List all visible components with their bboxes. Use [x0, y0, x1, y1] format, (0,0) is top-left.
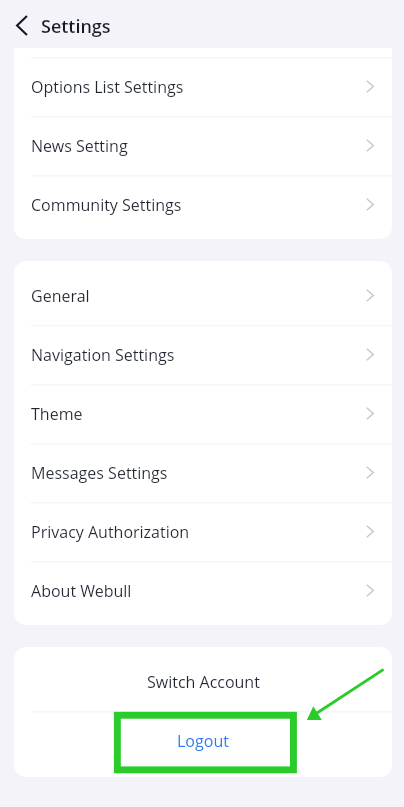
staticText: News Setting [31, 135, 128, 157]
staticText: Logout [177, 730, 229, 752]
button[interactable]: Options List Settings [14, 57, 392, 116]
staticText: General [31, 285, 90, 307]
staticText: Switch Account [147, 671, 260, 693]
button[interactable]: Back [0, 3, 43, 47]
button[interactable]: General [14, 266, 392, 325]
staticText: About Webull [31, 580, 132, 602]
button[interactable]: Community Settings [14, 175, 392, 234]
staticText: Privacy Authorization [31, 521, 190, 543]
staticText: Theme [31, 403, 83, 425]
staticText: Settings [41, 14, 111, 39]
staticText: Community Settings [31, 194, 182, 216]
button[interactable]: Privacy Authorization [14, 502, 392, 561]
button[interactable]: About Webull [14, 561, 392, 620]
button[interactable]: Logout [14, 711, 392, 770]
button[interactable]: News Setting [14, 116, 392, 175]
button[interactable]: Switch Account [14, 652, 392, 711]
button[interactable]: Theme [14, 384, 392, 443]
button[interactable]: Navigation Settings [14, 325, 392, 384]
staticText: Messages Settings [31, 462, 168, 484]
staticText: Navigation Settings [31, 344, 175, 366]
button[interactable]: Messages Settings [14, 443, 392, 502]
staticText: Options List Settings [31, 76, 184, 98]
